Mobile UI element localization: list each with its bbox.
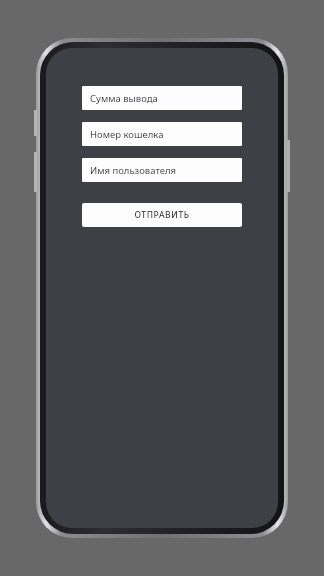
staticText: Имя пользователя xyxy=(90,164,177,177)
button[interactable]: Номер кошелка xyxy=(82,122,242,146)
button[interactable]: Сумма вывода xyxy=(82,86,242,110)
button[interactable]: Имя пользователя xyxy=(82,158,242,182)
staticText: ОТПРАВИТЬ xyxy=(134,209,190,221)
button[interactable]: ОТПРАВИТЬ xyxy=(82,203,242,227)
staticText: Сумма вывода xyxy=(90,92,158,105)
staticText: Номер кошелка xyxy=(90,128,164,141)
